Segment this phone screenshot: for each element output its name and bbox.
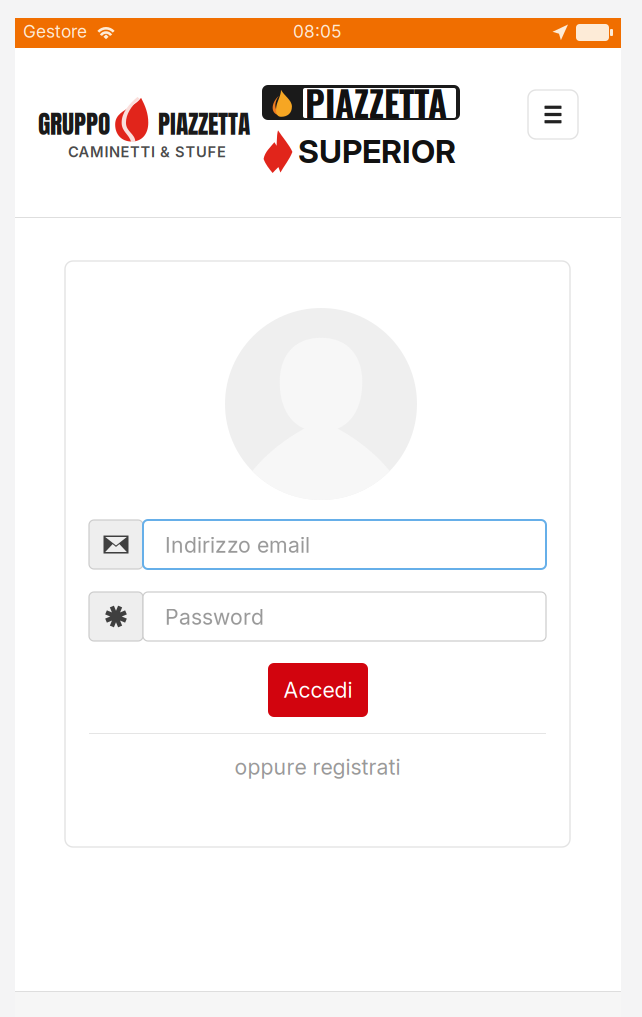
staticText: PIAZZETTA — [305, 77, 447, 128]
staticText: SUPERIOR — [298, 132, 456, 171]
button[interactable]: Indirizzo email — [89, 520, 546, 569]
staticText: Accedi — [283, 677, 352, 703]
button[interactable]: Password — [89, 592, 546, 641]
staticText: oppure registrati — [234, 754, 400, 780]
button[interactable]: Accedi — [268, 663, 368, 717]
button[interactable]: Menu — [528, 90, 578, 139]
staticText: Indirizzo email — [165, 532, 310, 558]
staticText: Gestore — [23, 21, 87, 42]
staticText: Password — [165, 604, 264, 630]
staticText: GRUPPO — [38, 105, 110, 143]
staticText: 08:05 — [293, 21, 342, 42]
staticText: PIAZZETTA — [158, 105, 250, 143]
button[interactable]: oppure registrati — [89, 744, 546, 790]
staticText: CAMINETTI & STUFE — [68, 143, 226, 161]
